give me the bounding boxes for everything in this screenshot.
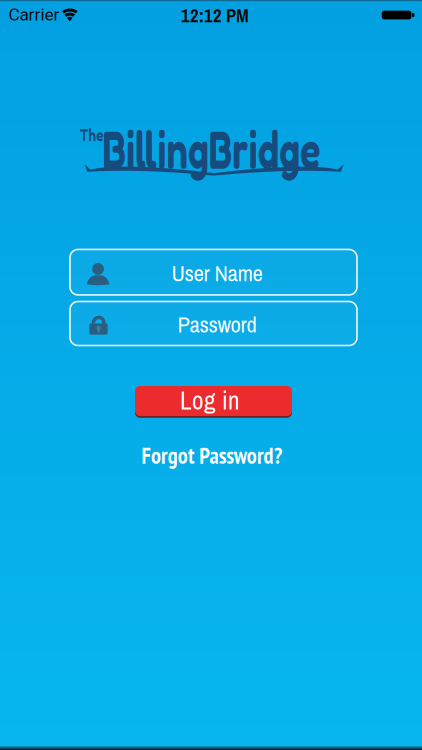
staticText: BillingBridge [58,117,364,181]
staticText: Password [177,309,256,339]
staticText: User Name [171,258,262,288]
button[interactable]: User Name [70,249,357,295]
button[interactable]: Forgot Password? [136,439,287,470]
staticText: Carrier [8,4,59,25]
staticText: Log in [180,383,240,417]
staticText: The [76,124,106,145]
staticText: 12:12 PM [181,3,249,28]
staticText: Forgot Password? [136,439,287,470]
button[interactable]: Log in [135,386,292,416]
button[interactable]: Password [70,301,357,345]
